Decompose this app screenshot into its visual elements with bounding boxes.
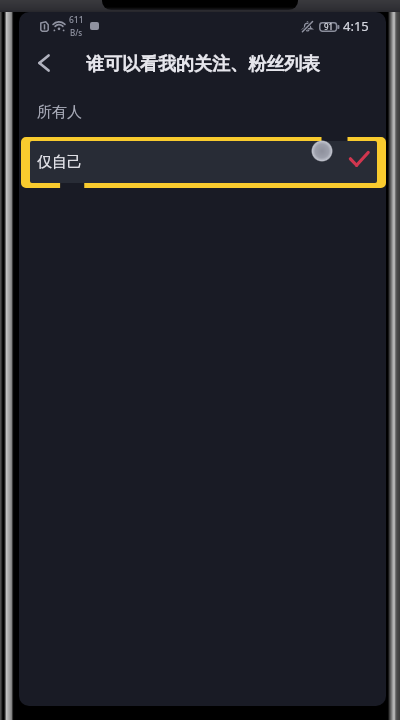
- staticText: 所有人: [37, 103, 82, 122]
- staticText: B/s: [70, 27, 83, 38]
- button[interactable]: 返回: [22, 49, 66, 77]
- staticText: 仅自己: [37, 153, 82, 172]
- staticText: 4:15: [343, 17, 369, 35]
- staticText: 91: [324, 21, 334, 32]
- staticText: 谁可以看我的关注、粉丝列表: [86, 53, 320, 76]
- button[interactable]: 仅自己: [21, 137, 386, 188]
- staticText: 611: [69, 14, 84, 26]
